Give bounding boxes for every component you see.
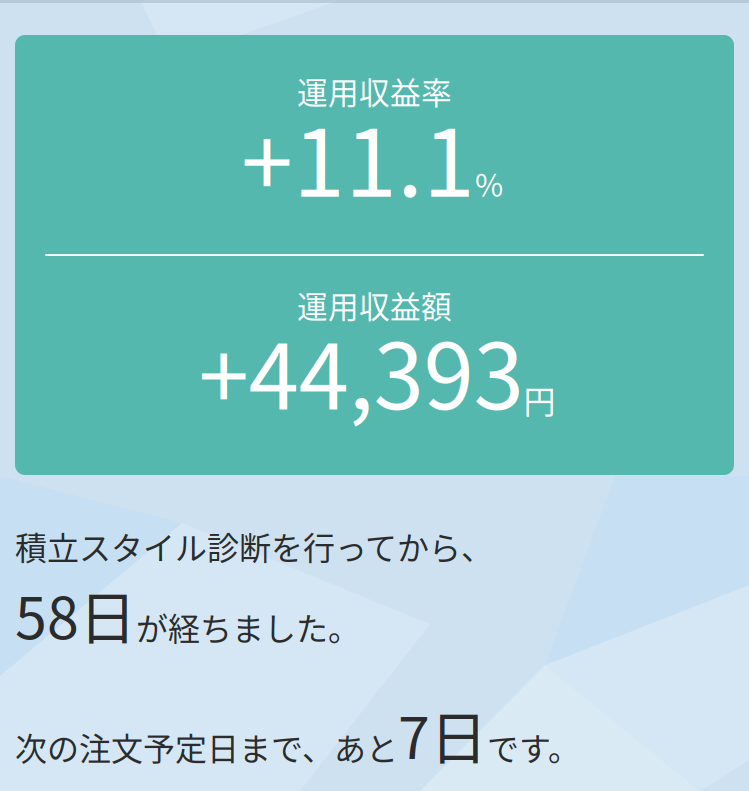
staticText: 運用収益率 xyxy=(297,69,452,113)
staticText: 積立スタイル診断を行ってから、 xyxy=(15,523,493,569)
staticText: +11.1% xyxy=(241,90,503,222)
staticText: 58日が経ちました。 xyxy=(15,573,360,654)
staticText: 運用収益額 xyxy=(297,283,452,327)
staticText: +44,393円 xyxy=(198,306,555,434)
staticText: 次の注文予定日まで、あと7日です。 xyxy=(15,693,580,774)
